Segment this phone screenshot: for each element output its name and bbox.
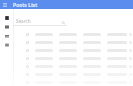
button[interactable] [13, 46, 133, 54]
button[interactable]: Settings [0, 40, 13, 49]
staticText: Search [16, 18, 31, 24]
button[interactable]: Dashboard [0, 13, 13, 22]
button[interactable] [13, 70, 133, 78]
button[interactable] [13, 38, 133, 46]
other: Search [61, 21, 66, 25]
button[interactable] [13, 30, 133, 38]
button[interactable]: Posts [0, 22, 13, 31]
button[interactable]: Media [0, 31, 13, 40]
button[interactable]: Search [16, 9, 66, 26]
button[interactable]: Menu [0, 0, 10, 9]
staticText: Posts List [13, 1, 38, 8]
button[interactable] [13, 62, 133, 70]
button[interactable] [13, 78, 133, 86]
button[interactable] [13, 54, 133, 62]
